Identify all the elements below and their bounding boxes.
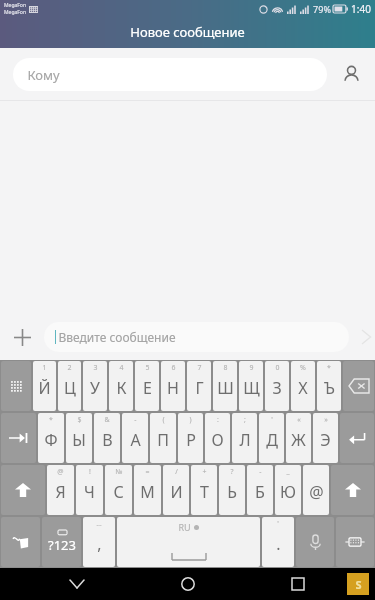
button[interactable]: @: [47, 465, 74, 515]
staticText: Новое сообщение: [130, 23, 245, 41]
button[interactable]: Клавиша: [340, 413, 374, 463]
staticText: ,: [97, 533, 102, 555]
button[interactable]: _: [275, 465, 301, 515]
button[interactable]: Выбрать контакт: [327, 48, 375, 100]
button[interactable]: Клавиша: [331, 465, 374, 515]
button[interactable]: -: [122, 413, 148, 463]
button[interactable]: !: [76, 465, 103, 515]
staticText: *: [327, 363, 331, 373]
button[interactable]: ?: [219, 465, 245, 515]
button[interactable]: »: [313, 413, 338, 463]
staticText: И: [170, 481, 183, 503]
button[interactable]: Домой: [171, 568, 205, 600]
staticText: Х: [298, 377, 308, 399]
staticText: В: [102, 429, 113, 451]
button[interactable]: 5: [135, 361, 159, 411]
button[interactable]: *: [38, 413, 64, 463]
button[interactable]: Добавить вложение: [0, 315, 44, 359]
button[interactable]: Клавиша: [343, 361, 374, 411]
button[interactable]: Клавиша: [1, 413, 36, 463]
staticText: 1: [42, 363, 47, 373]
staticText: +: [202, 467, 207, 477]
staticText: М: [140, 481, 155, 503]
button[interactable]: Клавиша: [296, 517, 334, 567]
staticText: Ц: [64, 377, 76, 399]
button[interactable]: Клавиша: [336, 517, 374, 567]
button[interactable]: @: [303, 465, 329, 515]
staticText: !: [89, 467, 91, 477]
button[interactable]: /: [163, 465, 189, 515]
staticText: =: [145, 467, 150, 477]
button[interactable]: Кому: [13, 58, 327, 91]
button[interactable]: 9: [239, 361, 263, 411]
button[interactable]: Клавиша: [42, 517, 81, 567]
staticText: Ю: [280, 481, 296, 503]
staticText: №: [115, 467, 123, 477]
button[interactable]: Недавние: [281, 568, 315, 600]
staticText: Ш: [217, 377, 234, 399]
button[interactable]: Пробел: [117, 517, 260, 567]
button[interactable]: 0: [265, 361, 289, 411]
staticText: А: [130, 429, 141, 451]
button[interactable]: Клавиша: [1, 517, 40, 567]
staticText: 79%: [313, 3, 331, 15]
staticText: З: [272, 377, 282, 399]
button[interactable]: Назад: [60, 568, 94, 600]
button[interactable]: (: [150, 413, 176, 463]
staticText: Ь: [227, 481, 237, 503]
button[interactable]: *: [317, 361, 341, 411]
button[interactable]: ': [262, 517, 294, 567]
staticText: .: [276, 533, 281, 555]
staticText: ?123: [48, 536, 76, 554]
button[interactable]: $: [66, 413, 92, 463]
staticText: 3: [93, 363, 98, 373]
button[interactable]: 7: [187, 361, 211, 411]
button[interactable]: «: [286, 413, 311, 463]
staticText: …: [96, 519, 102, 529]
staticText: @: [309, 481, 324, 503]
button[interactable]: Клавиша: [1, 465, 45, 515]
button[interactable]: 4: [109, 361, 133, 411]
staticText: 6: [171, 363, 176, 373]
button[interactable]: &: [94, 413, 120, 463]
button[interactable]: ): [178, 413, 203, 463]
staticText: MegaFon: [4, 2, 26, 9]
staticText: С: [113, 481, 124, 503]
button[interactable]: Введите сообщение: [44, 322, 349, 352]
button[interactable]: 1: [33, 361, 56, 411]
staticText: S: [355, 577, 362, 592]
staticText: Ы: [72, 429, 86, 451]
button[interactable]: -: [247, 465, 273, 515]
staticText: 4: [119, 363, 124, 373]
staticText: -: [259, 467, 262, 477]
button[interactable]: %: [291, 361, 315, 411]
button[interactable]: 6: [161, 361, 185, 411]
staticText: :: [217, 415, 219, 425]
staticText: ): [189, 415, 192, 425]
button[interactable]: №: [105, 465, 132, 515]
staticText: Г: [195, 377, 204, 399]
button[interactable]: …: [83, 517, 115, 567]
button[interactable]: =: [134, 465, 161, 515]
button[interactable]: ': [259, 413, 284, 463]
staticText: К: [116, 377, 127, 399]
staticText: Введите сообщение: [58, 329, 176, 345]
staticText: «: [297, 415, 301, 425]
button[interactable]: +: [191, 465, 217, 515]
staticText: 7: [197, 363, 202, 373]
button[interactable]: Клавиша: [1, 361, 31, 411]
button[interactable]: 3: [83, 361, 107, 411]
staticText: ': [271, 415, 273, 425]
staticText: Е: [143, 377, 152, 399]
button[interactable]: :: [205, 413, 230, 463]
staticText: RU: [178, 521, 191, 533]
staticText: ?: [230, 467, 234, 477]
staticText: %: [300, 363, 306, 373]
button[interactable]: 2: [58, 361, 81, 411]
staticText: Кому: [27, 66, 60, 84]
button[interactable]: 8: [213, 361, 237, 411]
button[interactable]: ;: [232, 413, 257, 463]
staticText: 2: [67, 363, 72, 373]
staticText: 1:40: [351, 2, 371, 16]
